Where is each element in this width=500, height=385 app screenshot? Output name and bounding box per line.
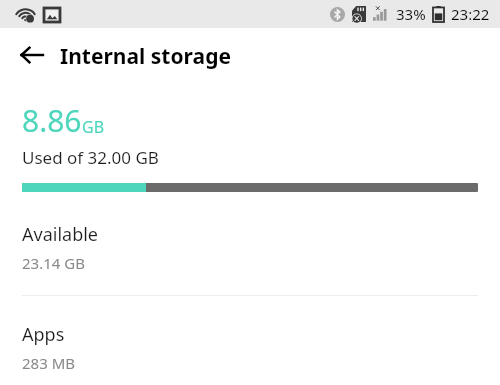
staticText: GB [82,116,105,138]
staticText: Used of 32.00 GB [22,146,159,169]
button[interactable]: Back [12,35,52,75]
staticText: 33% [396,4,426,24]
staticText: Available [22,222,98,247]
staticText: 23:22 [451,4,490,24]
staticText: Apps [22,322,65,347]
staticText: 23.14 GB [22,253,85,273]
button[interactable]: Apps [0,318,500,377]
staticText: 8.86 [22,100,82,141]
staticText: 283 MB [22,353,75,373]
staticText: Internal storage [60,42,231,71]
button[interactable]: Available [0,218,500,277]
